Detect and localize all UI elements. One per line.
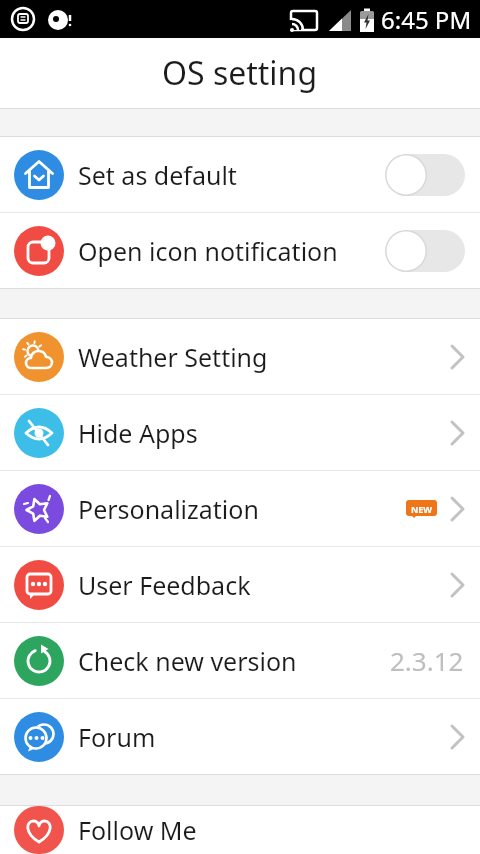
- staticText: Check new version: [78, 644, 297, 678]
- staticText: OS setting: [162, 51, 318, 95]
- button[interactable]: User Feedback: [0, 547, 480, 622]
- staticText: 2.3.12: [390, 643, 464, 678]
- staticText: Follow Me: [78, 813, 197, 847]
- staticText: Forum: [78, 720, 156, 754]
- staticText: 6:45 PM: [381, 3, 472, 36]
- button[interactable]: [385, 230, 465, 272]
- staticText: Weather Setting: [78, 340, 268, 374]
- button[interactable]: Check new version: [0, 623, 480, 698]
- button[interactable]: Forum: [0, 699, 480, 774]
- button[interactable]: Personalization: [0, 471, 480, 546]
- staticText: Open icon notification: [78, 234, 338, 268]
- button[interactable]: Weather Setting: [0, 319, 480, 394]
- button[interactable]: Set as default: [0, 137, 480, 212]
- staticText: User Feedback: [78, 568, 251, 602]
- staticText: Set as default: [78, 158, 237, 192]
- staticText: Personalization: [78, 492, 259, 526]
- button[interactable]: Hide Apps: [0, 395, 480, 470]
- staticText: Hide Apps: [78, 416, 198, 450]
- button[interactable]: Open icon notification: [0, 213, 480, 288]
- staticText: NEW: [411, 503, 433, 515]
- button[interactable]: Follow Me: [0, 806, 480, 854]
- button[interactable]: [385, 154, 465, 196]
